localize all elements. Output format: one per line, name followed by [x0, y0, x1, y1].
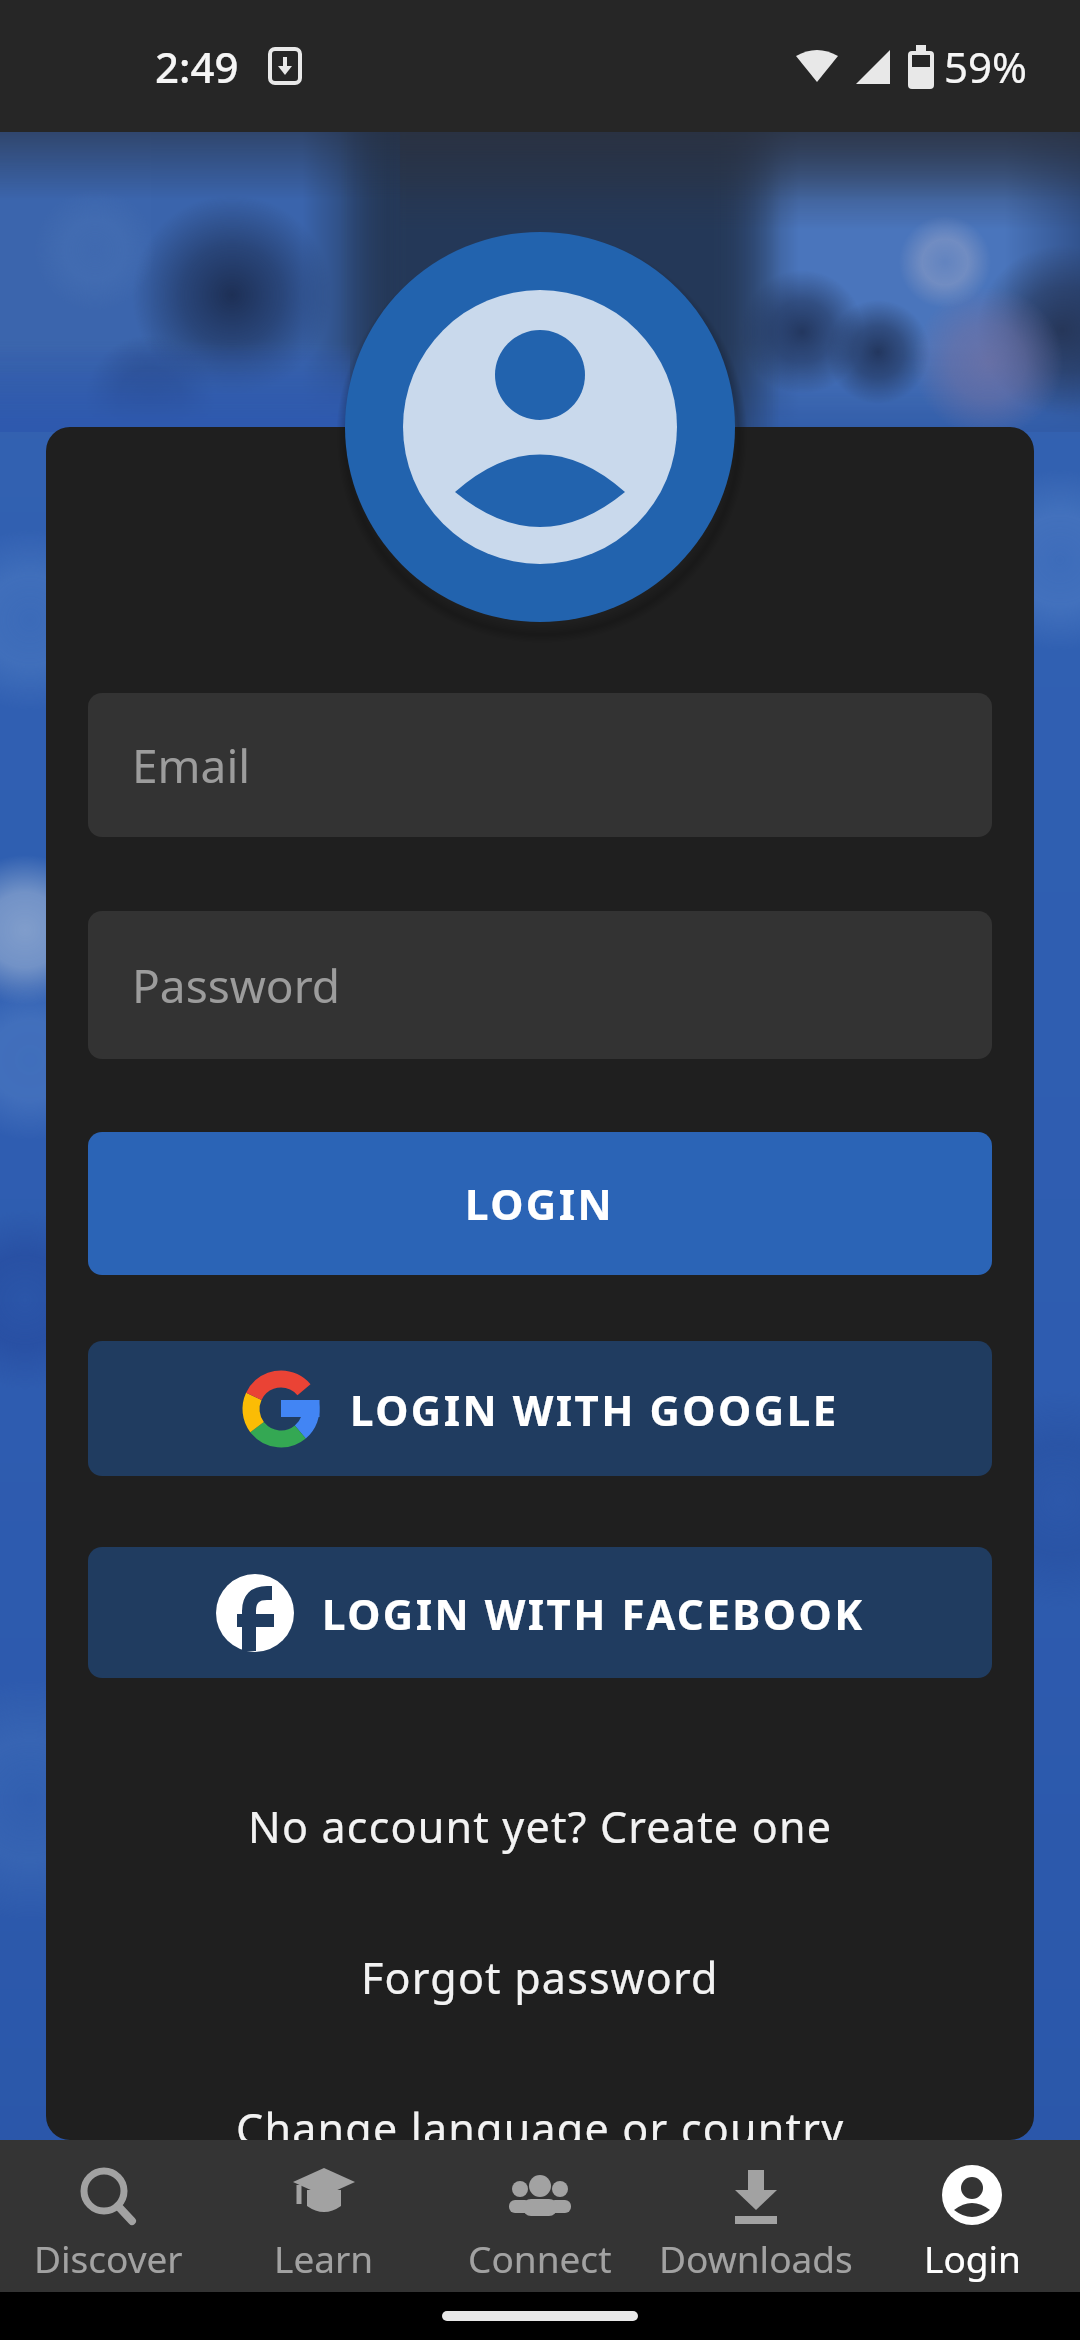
staticText: LOGIN WITH FACEBOOK: [322, 1585, 865, 1642]
button[interactable]: Downloads: [648, 2140, 864, 2292]
staticText: Connect: [468, 2233, 612, 2283]
button[interactable]: Connect: [432, 2140, 648, 2292]
button[interactable]: Discover: [0, 2140, 216, 2292]
button[interactable]: No account yet? Create one: [0, 1796, 1080, 1856]
button[interactable]: Password: [88, 911, 992, 1059]
staticText: No account yet? Create one: [248, 1797, 833, 1856]
staticText: Email: [132, 734, 251, 797]
staticText: LOGIN WITH GOOGLE: [350, 1381, 839, 1438]
staticText: Change language or country: [236, 2099, 845, 2158]
staticText: LOGIN: [465, 1175, 615, 1232]
button[interactable]: Change language or country: [0, 2098, 1080, 2158]
staticText: Discover: [34, 2233, 183, 2283]
button[interactable]: LOGIN WITH GOOGLE: [88, 1341, 992, 1476]
staticText: 59%: [944, 38, 1027, 95]
button[interactable]: LOGIN: [88, 1132, 992, 1275]
button[interactable]: Login: [864, 2140, 1080, 2292]
button[interactable]: LOGIN WITH FACEBOOK: [88, 1547, 992, 1678]
button[interactable]: Forgot password: [0, 1947, 1080, 2007]
button[interactable]: Email: [88, 693, 992, 837]
staticText: Password: [132, 954, 341, 1017]
staticText: Downloads: [659, 2233, 853, 2283]
staticText: Forgot password: [361, 1948, 719, 2007]
staticText: 2:49: [155, 38, 239, 95]
button[interactable]: Learn: [216, 2140, 432, 2292]
staticText: Login: [924, 2233, 1021, 2283]
staticText: Learn: [274, 2233, 374, 2283]
